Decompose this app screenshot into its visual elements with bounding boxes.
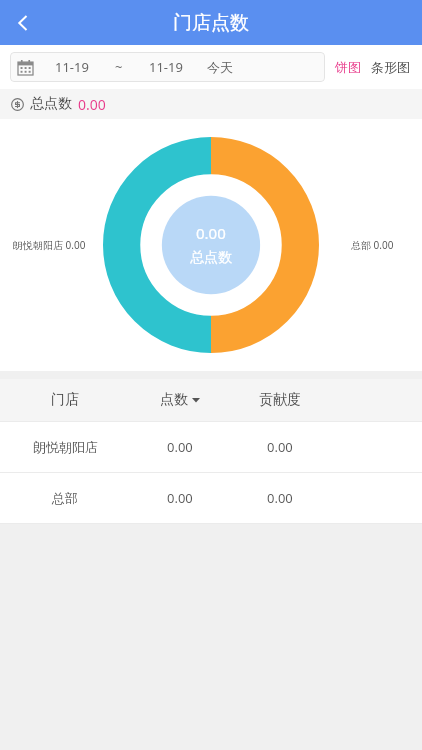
staticText: 0.00 xyxy=(267,438,293,456)
staticText: 0.00 xyxy=(167,438,193,456)
staticText: 总点数 xyxy=(190,249,232,267)
button[interactable]: 朗悦朝阳店 xyxy=(0,422,422,472)
button[interactable]: 条形图 xyxy=(369,55,412,79)
staticText: 11-19 xyxy=(149,58,183,76)
staticText: 门店 xyxy=(51,391,79,409)
button[interactable]: 饼图 xyxy=(333,55,363,79)
staticText: 0.00 xyxy=(78,95,106,114)
button[interactable]: 总部 xyxy=(0,473,422,523)
staticText: 0.00 xyxy=(196,223,226,243)
staticText: 门店点数 xyxy=(173,11,249,35)
staticText: 点数 xyxy=(160,391,188,409)
staticText: 11-19 xyxy=(55,58,89,76)
staticText: 朗悦朝阳店 xyxy=(33,439,98,455)
staticText: 总点数 xyxy=(30,95,72,113)
button[interactable]: 11-19 xyxy=(10,52,325,82)
button[interactable]: 点数 xyxy=(130,391,230,409)
staticText: 条形图 xyxy=(371,59,410,75)
staticText: 总部 0.00 xyxy=(351,238,394,252)
button[interactable]: Back xyxy=(0,0,45,45)
staticText: 饼图 xyxy=(335,59,361,75)
staticText: 贡献度 xyxy=(259,391,301,409)
staticText: 0.00 xyxy=(167,489,193,507)
staticText: 今天 xyxy=(207,59,233,75)
staticText: 朗悦朝阳店 0.00 xyxy=(13,238,86,252)
staticText: 总部 xyxy=(52,490,78,506)
staticText: 0.00 xyxy=(267,489,293,507)
staticText: ~ xyxy=(115,58,123,76)
